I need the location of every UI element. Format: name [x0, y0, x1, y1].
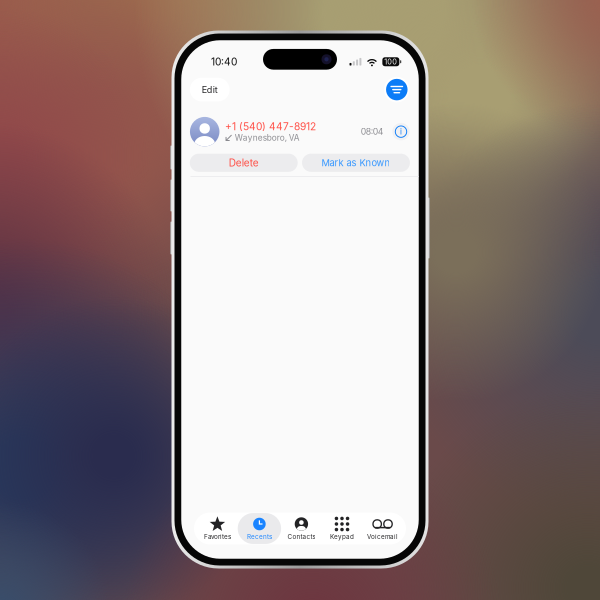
staticText: 10:40: [211, 56, 237, 68]
staticText: i: [400, 127, 402, 136]
button[interactable]: Edit: [190, 78, 230, 101]
button[interactable]: Recents: [238, 513, 281, 544]
button[interactable]: Call details: [392, 123, 410, 140]
button[interactable]: Filter calls: [384, 77, 410, 102]
button[interactable]: Delete: [190, 154, 298, 172]
staticText: Contacts: [287, 533, 315, 540]
staticText: Favorites: [204, 533, 231, 540]
staticText: Mark as Known: [321, 157, 390, 168]
button[interactable]: Keypad: [322, 513, 362, 544]
staticText: Keypad: [330, 533, 354, 540]
button[interactable]: Voicemail: [362, 513, 403, 544]
button[interactable]: Mark as Known: [302, 154, 410, 172]
staticText: +1 (540) 447-8912: [225, 120, 316, 133]
staticText: 100: [384, 57, 397, 66]
staticText: Delete: [229, 157, 259, 169]
staticText: 08:04: [361, 126, 384, 137]
staticText: Edit: [202, 84, 218, 95]
button[interactable]: Favorites: [197, 513, 238, 544]
staticText: Waynesboro, VA: [235, 133, 300, 143]
button[interactable]: Contacts: [281, 513, 322, 544]
staticText: Voicemail: [367, 533, 398, 540]
staticText: Recents: [247, 533, 272, 540]
